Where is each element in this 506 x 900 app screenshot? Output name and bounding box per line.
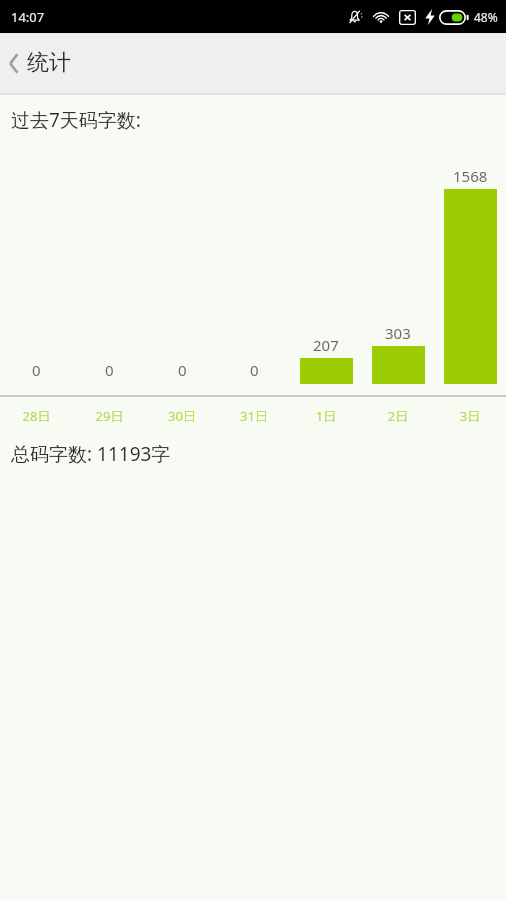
staticText: 14:07 xyxy=(11,8,45,26)
staticText: 0 xyxy=(250,360,259,380)
staticText: 31日 xyxy=(218,407,290,425)
staticText: 48% xyxy=(474,9,498,25)
button[interactable]: Back xyxy=(0,41,87,85)
staticText: 207 xyxy=(313,335,339,355)
staticText: 1日 xyxy=(290,407,362,425)
staticText: 过去7天码字数: xyxy=(11,107,141,133)
staticText: 28日 xyxy=(0,407,73,425)
staticText: 3日 xyxy=(434,407,506,425)
staticText: 30日 xyxy=(146,407,218,425)
staticText: 总码字数: 11193字 xyxy=(11,441,171,467)
staticText: 1568 xyxy=(453,166,488,186)
staticText: 2日 xyxy=(362,407,434,425)
staticText: 29日 xyxy=(73,407,146,425)
staticText: 0 xyxy=(178,360,187,380)
staticText: 303 xyxy=(385,323,411,343)
staticText: 0 xyxy=(32,360,41,380)
staticText: 0 xyxy=(105,360,114,380)
staticText: 统计 xyxy=(27,49,71,77)
